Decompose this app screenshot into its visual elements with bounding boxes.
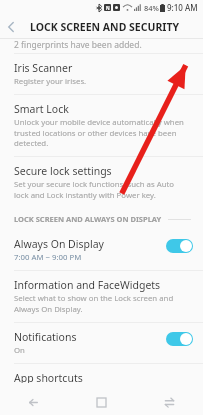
- button[interactable]: Recents: [135, 390, 203, 415]
- staticText: LOCK SCREEN AND SECURITY: [30, 20, 180, 34]
- button[interactable]: Secure lock settings: [0, 157, 203, 208]
- button[interactable]: Toggle: [166, 239, 193, 253]
- staticText: Information and FaceWidgets: [14, 278, 161, 292]
- staticText: Secure lock settings: [14, 164, 112, 178]
- button[interactable]: Always On Display: [0, 230, 203, 270]
- staticText: App shortcuts: [14, 371, 83, 383]
- button[interactable]: Smart Lock: [0, 95, 203, 156]
- staticText: LOCK SCREEN AND ALWAYS ON DISPLAY: [14, 214, 162, 224]
- button[interactable]: Back: [0, 16, 22, 38]
- staticText: 9:10 AM: [167, 2, 198, 13]
- staticText: Unlock your mobile device automatically …: [14, 117, 187, 149]
- staticText: N: [106, 5, 110, 11]
- staticText: Iris Scanner: [14, 61, 73, 75]
- button[interactable]: Iris Scanner: [0, 54, 203, 94]
- staticText: Register your irises.: [14, 76, 87, 87]
- button[interactable]: Toggle: [166, 332, 193, 346]
- staticText: On: [14, 345, 25, 356]
- button[interactable]: Information and FaceWidgets: [0, 271, 203, 322]
- button[interactable]: App shortcuts: [0, 364, 203, 390]
- staticText: 84%: [144, 3, 159, 13]
- staticText: 2 fingerprints have been added.: [14, 39, 142, 51]
- button[interactable]: Home: [67, 390, 135, 415]
- staticText: Always On Display: [14, 237, 104, 251]
- button[interactable]: Notifications: [0, 323, 203, 363]
- staticText: 7:00 AM ~ 9:00 PM: [14, 252, 82, 263]
- staticText: Smart Lock: [14, 102, 69, 116]
- staticText: Notifications: [14, 330, 77, 344]
- button[interactable]: Back: [0, 390, 67, 415]
- staticText: Set your secure lock functions, such as …: [14, 179, 187, 201]
- staticText: Select what to show on the Lock screen a…: [14, 293, 187, 315]
